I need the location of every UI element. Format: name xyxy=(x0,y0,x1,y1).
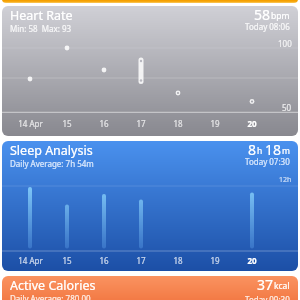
staticText: 100 xyxy=(278,38,292,49)
staticText: 14 Apr xyxy=(18,118,43,129)
staticText: Heart Rate xyxy=(10,7,73,24)
staticText: h xyxy=(257,145,265,157)
staticText: 20 xyxy=(247,255,257,266)
staticText: 8 xyxy=(248,141,257,159)
button[interactable]: Heart Rate xyxy=(2,6,298,136)
staticText: 37 xyxy=(257,276,274,294)
staticText: 17 xyxy=(136,118,146,129)
staticText: Active Calories xyxy=(10,277,96,294)
staticText: 19 xyxy=(210,118,220,129)
staticText: Today 09:30 xyxy=(245,294,290,300)
staticText: 15 xyxy=(62,255,72,266)
staticText: 14 Apr xyxy=(18,255,43,266)
staticText: kcal xyxy=(274,280,290,292)
staticText: 16 xyxy=(99,118,109,129)
staticText: 18 xyxy=(173,255,183,266)
staticText: Min: 58 Max: 93 xyxy=(10,23,72,34)
staticText: 17 xyxy=(136,255,146,266)
staticText: Today 08:06 xyxy=(245,21,290,32)
staticText: 18 xyxy=(265,141,282,159)
staticText: 15 xyxy=(62,118,72,129)
staticText: 58 xyxy=(254,6,271,24)
staticText: Sleep Analysis xyxy=(10,142,93,159)
button[interactable]: Active Calories xyxy=(2,276,298,300)
staticText: 12h xyxy=(279,175,292,185)
staticText: Today 07:30 xyxy=(245,156,290,167)
button[interactable] xyxy=(2,0,298,3)
staticText: 20 xyxy=(247,118,257,129)
staticText: Daily Average: 7h 54m xyxy=(10,158,94,169)
staticText: 16 xyxy=(99,255,109,266)
staticText: m xyxy=(282,145,290,157)
staticText: Daily Average: 780.00 xyxy=(10,293,91,300)
staticText: bpm xyxy=(271,10,290,22)
staticText: 19 xyxy=(210,255,220,266)
button[interactable]: Sleep Analysis xyxy=(2,141,298,271)
staticText: 18 xyxy=(173,118,183,129)
staticText: 50 xyxy=(282,102,292,113)
